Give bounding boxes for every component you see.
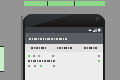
button[interactable] [77,44,103,52]
button[interactable] [25,33,103,44]
button[interactable] [25,44,51,52]
button[interactable] [51,44,77,52]
button[interactable] [28,59,100,62]
